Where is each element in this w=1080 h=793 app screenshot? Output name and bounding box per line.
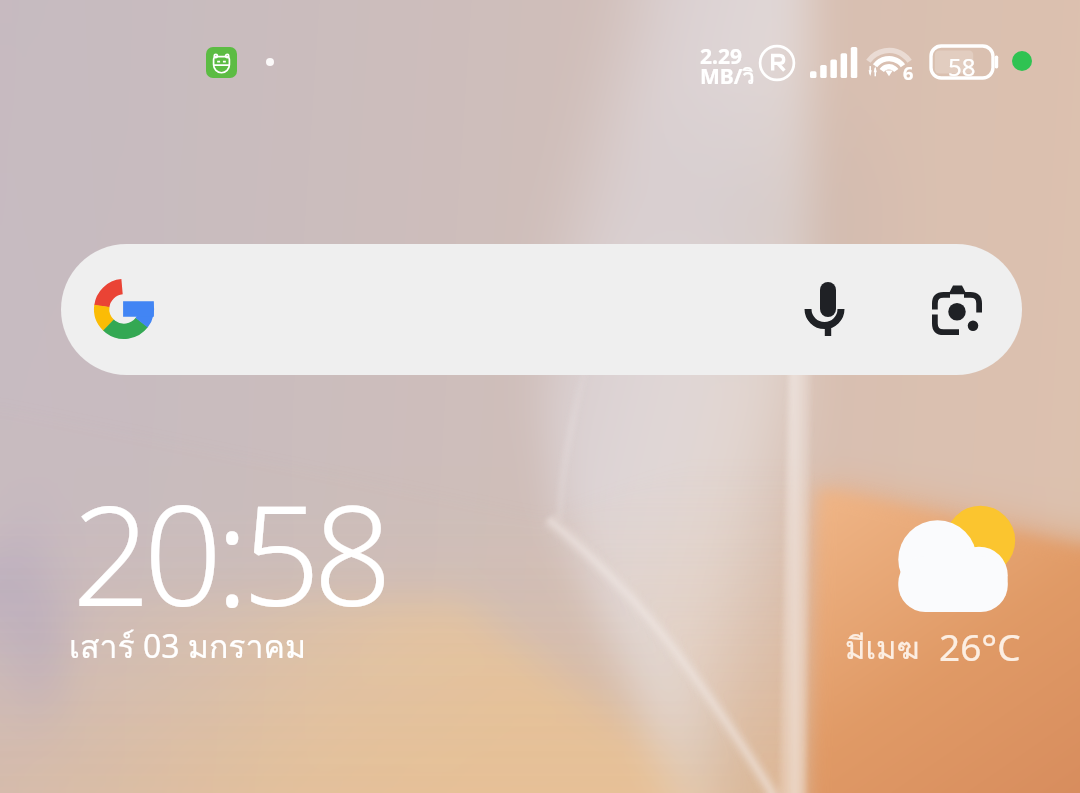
button[interactable]: มีเมฆ	[820, 490, 1060, 680]
staticText: มีเมฆ	[845, 623, 920, 672]
button[interactable]: Voice search	[778, 259, 878, 359]
staticText: 26°C	[939, 621, 1021, 671]
staticText: เสาร์ 03 มกราคม	[69, 621, 306, 672]
button[interactable]: Google Lens	[907, 259, 1007, 359]
staticText: MB/วิ	[700, 60, 755, 93]
staticText: 6	[903, 61, 914, 86]
staticText: 2.29	[700, 42, 742, 71]
button[interactable]: 20:58	[60, 440, 480, 690]
staticText: 58	[948, 50, 976, 83]
button[interactable]: Voice search	[61, 244, 1022, 375]
staticText: 20:58	[72, 458, 385, 646]
